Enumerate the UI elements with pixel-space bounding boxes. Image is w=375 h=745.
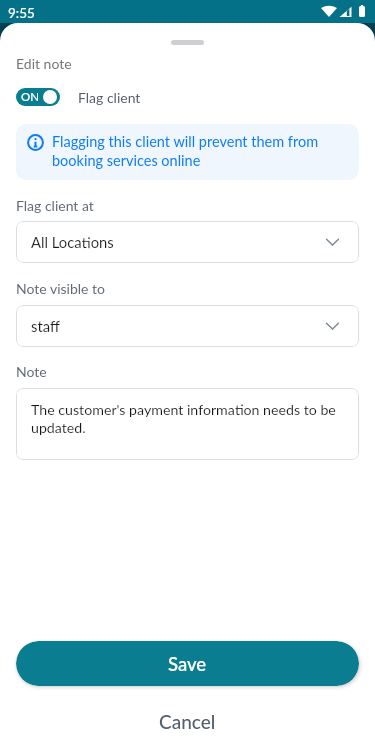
button[interactable]: Save xyxy=(16,641,359,686)
button[interactable]: All Locations xyxy=(16,221,359,263)
staticText: Cancel xyxy=(159,710,216,733)
button[interactable]: Flag client toggle, on xyxy=(16,88,60,106)
button[interactable]: Cancel xyxy=(0,699,375,743)
staticText: staff xyxy=(31,317,60,335)
staticText: Note xyxy=(16,363,47,380)
staticText: Edit note xyxy=(16,55,72,72)
staticText: The customer's payment information needs… xyxy=(31,401,344,436)
staticText: 9:55 xyxy=(8,5,35,21)
staticText: Flag client xyxy=(78,89,141,106)
staticText: ON xyxy=(21,90,39,104)
staticText: Save xyxy=(168,653,207,675)
button[interactable]: staff xyxy=(16,305,359,347)
staticText: All Locations xyxy=(31,233,114,251)
button[interactable]: The customer's payment information needs… xyxy=(16,388,359,460)
staticText: Flag client at xyxy=(16,197,94,214)
staticText: Flagging this client will prevent them f… xyxy=(52,133,345,169)
staticText: Note visible to xyxy=(16,280,105,297)
